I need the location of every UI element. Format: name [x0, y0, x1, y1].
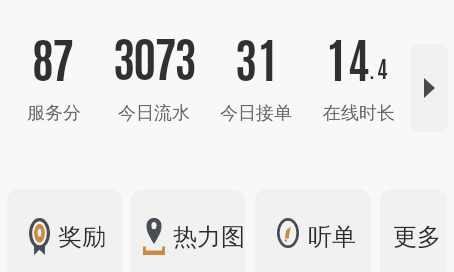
staticText: 14 — [329, 27, 373, 88]
button[interactable]: 更多 — [380, 189, 447, 272]
staticText: 今日流水 — [118, 102, 190, 125]
staticText: 热力图 — [173, 222, 245, 252]
staticText: 更多 — [393, 222, 441, 252]
staticText: 今日接单 — [220, 102, 292, 125]
button[interactable]: 听单 — [255, 189, 371, 272]
staticText: 3073 — [113, 26, 195, 87]
button[interactable]: 奖励 — [7, 189, 122, 272]
staticText: 87 — [32, 27, 72, 88]
staticText: 31 — [235, 27, 280, 88]
staticText: 在线时长 — [323, 102, 395, 125]
staticText: 听单 — [308, 222, 356, 252]
staticText: 4 — [377, 52, 387, 82]
button[interactable]: Expand panel — [411, 44, 448, 132]
staticText: 奖励 — [58, 222, 106, 252]
staticText: . — [369, 52, 375, 82]
staticText: 服务分 — [27, 102, 81, 125]
button[interactable]: 热力图 — [131, 189, 245, 272]
